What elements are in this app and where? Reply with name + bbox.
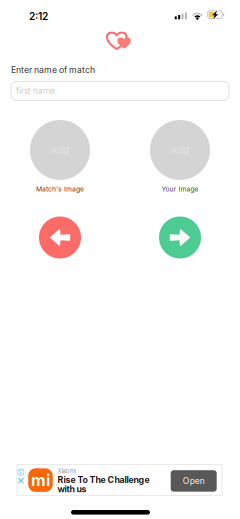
staticText: Open (183, 476, 205, 486)
staticText: Rise To The Challenge (58, 474, 150, 485)
button[interactable]: Add Match's Image (30, 120, 90, 180)
staticText: Match's Image (36, 185, 84, 193)
staticText: 2:12 (29, 10, 48, 22)
staticText: Add (50, 144, 69, 156)
staticText: Enter name of match (11, 65, 95, 75)
staticText: mi (31, 470, 50, 490)
staticText: Xiaomi (58, 467, 76, 475)
button[interactable]: Add Your Image (150, 120, 210, 180)
button[interactable]: Open (171, 470, 217, 492)
staticText: first name (16, 86, 55, 96)
button[interactable]: Next (159, 216, 201, 258)
staticText: Your Image (161, 185, 198, 193)
button[interactable]: Previous (39, 216, 81, 258)
staticText: with us (58, 484, 87, 494)
staticText: Add (170, 144, 189, 156)
